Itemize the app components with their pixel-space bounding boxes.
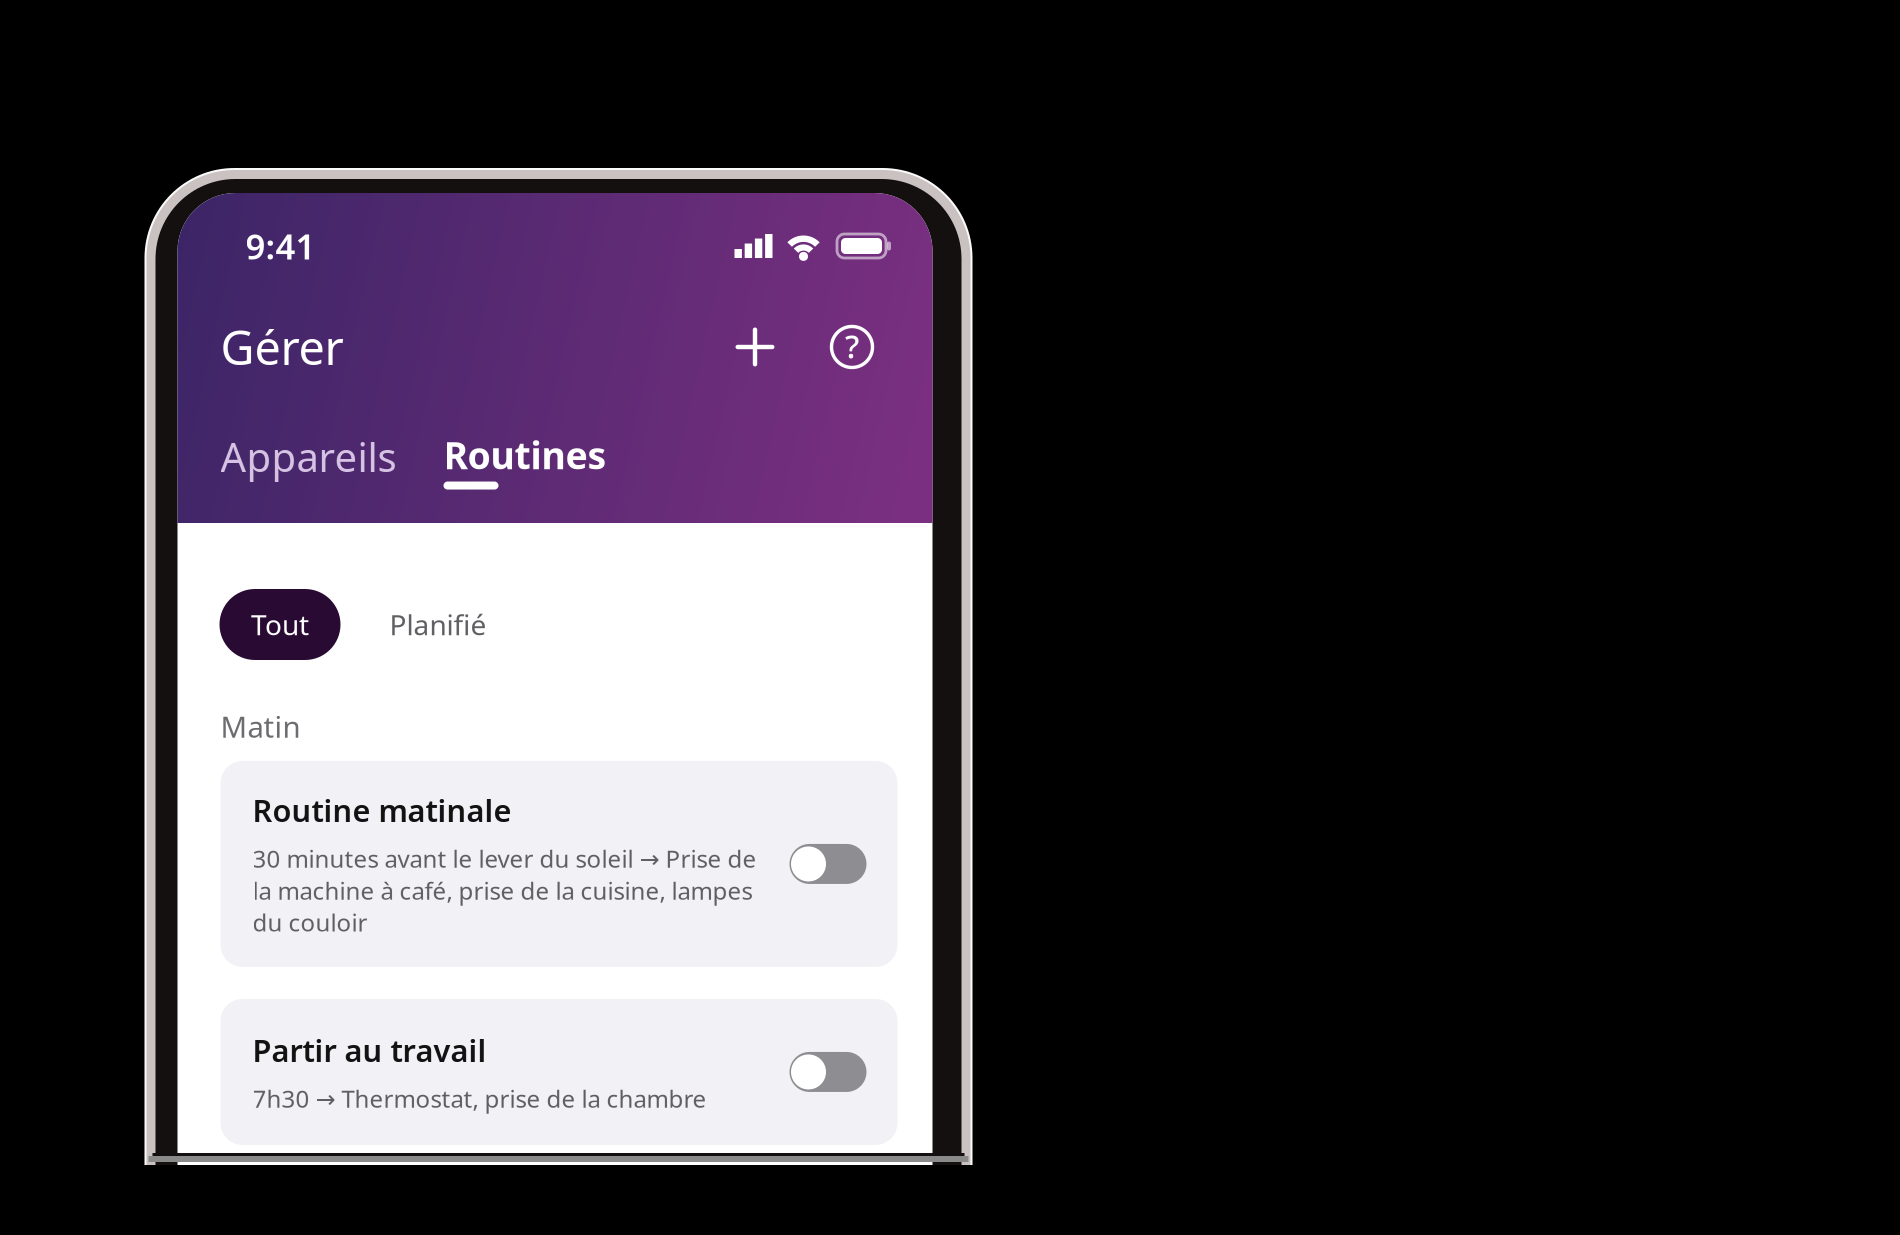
button[interactable]: Planifié	[389, 589, 486, 660]
staticText: 7h30 → Thermostat, prise de la chambre	[252, 1082, 706, 1114]
staticText: Planifié	[389, 606, 486, 643]
button[interactable]: Aide	[831, 325, 872, 369]
staticText: du couloir	[252, 906, 367, 938]
staticText: Routines	[443, 430, 606, 480]
staticText: Gérer	[220, 316, 343, 378]
staticText: la machine à café, prise de la cuisine, …	[252, 874, 752, 906]
button[interactable]: Routine matinale	[220, 761, 897, 967]
staticText: Tout	[251, 606, 309, 643]
button[interactable]: Tout	[219, 589, 340, 660]
staticText: 30 minutes avant le lever du soleil → Pr…	[252, 842, 756, 874]
button[interactable]: Routines	[443, 430, 606, 490]
staticText: Routine matinale	[252, 790, 511, 830]
button[interactable]: Partir au travail	[220, 999, 897, 1145]
staticText: Partir au travail	[252, 1030, 486, 1070]
button[interactable]: Ajouter	[735, 325, 774, 369]
staticText: Matin	[220, 707, 300, 746]
staticText: ?	[845, 325, 859, 367]
button[interactable]: Appareils	[220, 430, 396, 493]
staticText: Appareils	[220, 430, 396, 483]
staticText: 9:41	[245, 223, 315, 269]
